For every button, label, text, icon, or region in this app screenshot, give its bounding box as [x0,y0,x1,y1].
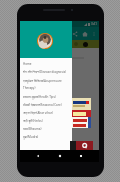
button[interactable]: मुद्रा(Mudra) [20,133,72,141]
button[interactable]: Home [81,30,89,38]
button[interactable]: More options [91,31,97,37]
button[interactable]: Back [35,153,41,159]
staticText: जड़ी बूटी(Herbs) [23,119,43,123]
staticText: एक्यूप्रेशर चिकित्सा(Acupressure Therapy… [23,79,70,90]
button[interactable]: एक्यूप्रेशर चिकित्सा(Acupressure Therapy… [20,76,72,93]
button[interactable]: Share [71,30,79,38]
button[interactable]: Advertisement [76,141,93,151]
staticText: रोग और निदान(Disease diagnosis) [23,70,66,74]
staticText: 3:41 [91,22,97,26]
button[interactable]: Recent apps [78,153,84,159]
button[interactable]: स्वास्थ्य सुझाव(Health Tips) [20,93,72,101]
button[interactable]: भस्म(Bhasma) [20,125,72,133]
staticText: Home [23,62,32,66]
button[interactable]: Category [74,42,78,46]
staticText: आहार विहार(Ahar vihar) [23,111,53,115]
staticText: भस्म(Bhasma) [23,127,42,131]
button[interactable]: Category [83,42,88,47]
staticText: मौसमी देखभाल(Seasonal Care) [23,103,62,107]
button[interactable]: आहार विहार(Ahar vihar) [20,109,72,117]
staticText: मुद्रा(Mudra) [23,135,39,139]
staticText: स्वास्थ्य सुझाव(Health Tips) [23,95,56,99]
button[interactable]: रोग और निदान(Disease diagnosis) [20,68,72,76]
button[interactable]: जड़ी बूटी(Herbs) [20,117,72,125]
button[interactable]: मौसमी देखभाल(Seasonal Care) [20,101,72,109]
button[interactable]: Home [57,153,63,159]
button[interactable]: Home [20,59,72,68]
button[interactable]: Advertisement [72,98,91,128]
